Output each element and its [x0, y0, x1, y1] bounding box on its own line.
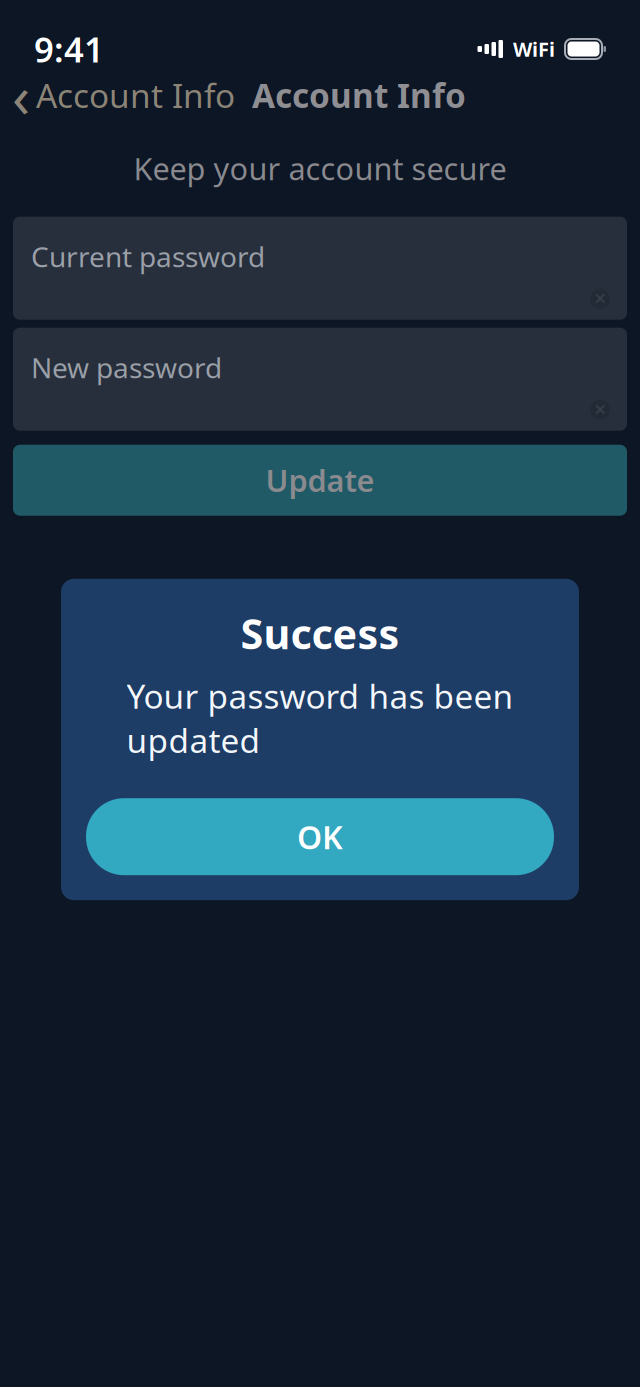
staticText: ✕: [593, 401, 606, 419]
button[interactable]: New password: [13, 328, 627, 431]
staticText: Keep your account secure: [133, 148, 506, 189]
staticText: Account Info: [252, 73, 466, 117]
staticText: Success: [240, 606, 399, 661]
button[interactable]: Current password: [13, 217, 627, 320]
staticText: Your password has been updated: [126, 674, 513, 762]
staticText: ✕: [593, 290, 606, 308]
staticText: WiFi: [513, 36, 555, 62]
staticText: ‹: [12, 56, 30, 134]
staticText: Account Info: [36, 73, 235, 117]
staticText: OK: [297, 815, 343, 858]
staticText: Update: [265, 460, 374, 501]
staticText: 9:41: [34, 26, 104, 72]
button[interactable]: ‹: [12, 48, 241, 142]
staticText: New password: [31, 349, 222, 386]
staticText: Current password: [31, 238, 265, 275]
button[interactable]: Update: [13, 445, 627, 516]
button[interactable]: OK: [86, 798, 554, 875]
